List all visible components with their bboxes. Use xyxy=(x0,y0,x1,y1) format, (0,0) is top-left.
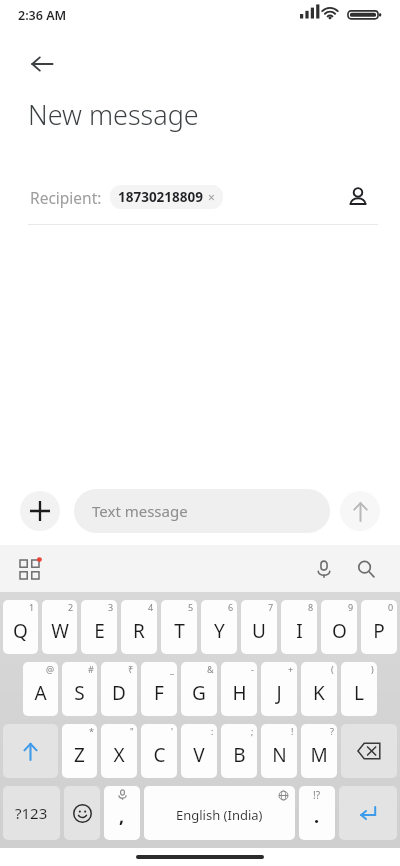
button[interactable]: # xyxy=(62,662,97,716)
button[interactable]: : xyxy=(181,724,217,778)
button[interactable]: Toolbar xyxy=(14,554,44,584)
staticText: G xyxy=(192,680,206,706)
button[interactable]: Voice input xyxy=(308,553,340,585)
staticText: V xyxy=(193,742,205,768)
staticText: F xyxy=(154,680,164,706)
button[interactable]: & xyxy=(181,662,217,716)
button[interactable]: Enter xyxy=(339,786,397,840)
button[interactable]: 8 xyxy=(281,600,317,654)
button[interactable]: Search xyxy=(350,553,382,585)
staticText: A xyxy=(34,680,47,706)
button[interactable]: @ xyxy=(23,662,58,716)
button[interactable]: 4 xyxy=(121,600,157,654)
button[interactable]: 3 xyxy=(81,600,117,654)
staticText: H xyxy=(232,680,247,706)
staticText: × xyxy=(208,189,215,205)
staticText: English (India) xyxy=(176,806,263,824)
button[interactable]: 7 xyxy=(241,600,277,654)
button[interactable]: Text message xyxy=(74,489,330,533)
staticText: R xyxy=(133,618,145,644)
button[interactable]: - xyxy=(221,662,257,716)
button[interactable]: 5 xyxy=(161,600,197,654)
button[interactable]: ?123 xyxy=(3,786,60,840)
button[interactable]: _ xyxy=(141,662,177,716)
staticText: D xyxy=(112,680,126,706)
staticText: 4 xyxy=(148,601,154,613)
staticText: K xyxy=(313,680,325,706)
button[interactable]: ! xyxy=(261,724,297,778)
staticText: 9 xyxy=(348,601,354,613)
staticText: 18730218809 xyxy=(118,188,203,206)
staticText: 3 xyxy=(108,601,114,613)
button[interactable]: 18730218809 xyxy=(110,185,223,209)
staticText: 0 xyxy=(388,601,394,613)
staticText: C xyxy=(153,742,166,768)
staticText: S xyxy=(74,680,85,706)
staticText: X xyxy=(113,742,125,768)
staticText: M xyxy=(310,742,328,768)
button[interactable]: Contacts xyxy=(340,179,376,215)
staticText: I xyxy=(296,618,303,644)
staticText: @ xyxy=(46,663,55,675)
button[interactable]: !? xyxy=(299,786,335,840)
button[interactable]: Send xyxy=(340,491,380,531)
staticText: Z xyxy=(74,742,85,768)
staticText: W xyxy=(51,618,69,644)
staticText: ; xyxy=(251,725,254,737)
button[interactable]: Shift xyxy=(3,724,58,778)
button[interactable]: ) xyxy=(341,662,377,716)
staticText: !? xyxy=(313,788,321,802)
staticText: N xyxy=(272,742,287,768)
staticText: ( xyxy=(331,663,334,675)
staticText: T xyxy=(174,618,185,644)
staticText: _ xyxy=(170,663,174,675)
staticText: B xyxy=(233,742,246,768)
button[interactable]: , xyxy=(104,786,140,840)
button[interactable]: + xyxy=(261,662,297,716)
staticText: : xyxy=(211,725,214,737)
staticText: 1 xyxy=(29,601,35,613)
button[interactable]: ( xyxy=(301,662,337,716)
button[interactable]: ₹ xyxy=(101,662,137,716)
staticText: J xyxy=(276,680,282,706)
staticText: 5 xyxy=(188,601,194,613)
button[interactable]: * xyxy=(62,724,97,778)
staticText: O xyxy=(332,618,347,644)
staticText: ' xyxy=(171,725,174,737)
button[interactable]: Emoji xyxy=(64,786,100,840)
staticText: New message xyxy=(28,96,199,133)
button[interactable]: ' xyxy=(141,724,177,778)
button[interactable]: Back xyxy=(22,44,62,84)
staticText: ! xyxy=(291,725,294,737)
staticText: * xyxy=(89,725,94,737)
staticText: Recipient: xyxy=(30,187,102,208)
staticText: Q xyxy=(13,618,28,644)
staticText: Text message xyxy=(92,501,188,521)
button[interactable]: ? xyxy=(301,724,337,778)
staticText: & xyxy=(207,663,214,675)
button[interactable]: 6 xyxy=(201,600,237,654)
staticText: L xyxy=(354,680,364,706)
staticText: - xyxy=(251,663,254,675)
button[interactable]: Backspace xyxy=(341,724,397,778)
button[interactable]: ; xyxy=(221,724,257,778)
staticText: E xyxy=(94,618,105,644)
button[interactable]: " xyxy=(101,724,137,778)
button[interactable]: 2 xyxy=(42,600,77,654)
staticText: Y xyxy=(214,618,225,644)
button[interactable]: 9 xyxy=(321,600,357,654)
staticText: ?123 xyxy=(15,803,48,823)
button[interactable]: Attach xyxy=(20,491,60,531)
staticText: ) xyxy=(371,663,374,675)
button[interactable]: 0 xyxy=(361,600,397,654)
staticText: 7 xyxy=(268,601,274,613)
button[interactable]: English (India) xyxy=(144,786,295,840)
staticText: # xyxy=(88,663,94,675)
staticText: + xyxy=(288,663,294,675)
staticText: 6 xyxy=(228,601,234,613)
staticText: 8 xyxy=(308,601,314,613)
staticText: ? xyxy=(330,725,334,737)
staticText: U xyxy=(252,618,266,644)
staticText: " xyxy=(130,725,134,737)
button[interactable]: 1 xyxy=(3,600,38,654)
